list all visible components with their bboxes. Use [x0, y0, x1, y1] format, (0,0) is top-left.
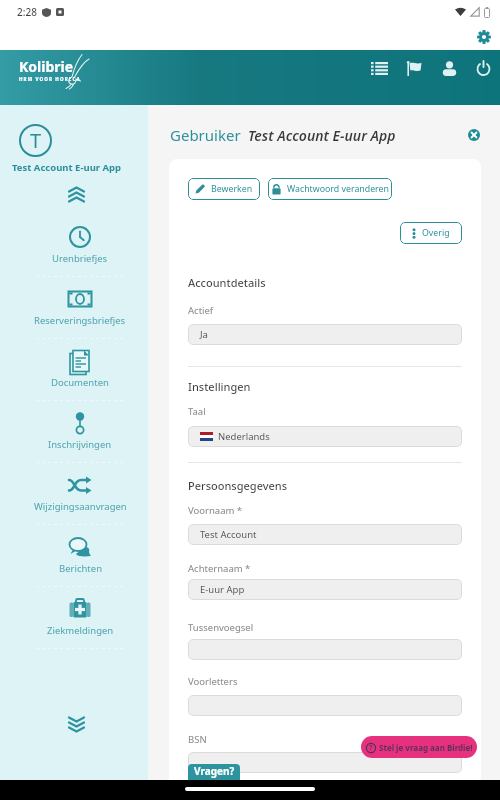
staticText: ? — [369, 743, 373, 753]
staticText: Overig — [422, 227, 450, 239]
button[interactable] — [477, 30, 491, 44]
button[interactable]: Reserveringsbriefjes — [6, 288, 154, 350]
staticText: Urenbriefjes — [52, 252, 108, 265]
button[interactable] — [468, 129, 480, 141]
staticText: BSN — [188, 733, 207, 746]
staticText: Achternaam * — [188, 562, 251, 575]
staticText: Actief — [188, 304, 214, 317]
staticText: Test Account — [200, 528, 257, 541]
button[interactable]: Wijzigingsaanvragen — [6, 474, 154, 536]
button[interactable]: ? — [361, 736, 477, 758]
button[interactable]: Vragen? — [188, 764, 240, 780]
staticText: Ziekmeldingen — [47, 624, 114, 637]
staticText: Wijzigingsaanvragen — [34, 500, 127, 513]
staticText: 2:28 — [17, 5, 37, 19]
staticText: Reserveringsbriefjes — [34, 314, 126, 327]
button[interactable]: Bewerken — [188, 178, 260, 200]
staticText: Persoonsgegevens — [188, 478, 288, 493]
staticText: Tussenvoegsel — [188, 621, 254, 634]
button[interactable] — [371, 62, 388, 75]
button[interactable]: Urenbriefjes — [6, 226, 154, 288]
button[interactable]: Documenten — [6, 350, 154, 412]
staticText: Inschrijvingen — [48, 438, 112, 451]
staticText: Voornaam * — [188, 504, 243, 517]
button[interactable]: Overig — [400, 222, 462, 244]
button[interactable] — [407, 61, 423, 76]
staticText: Voorletters — [188, 675, 238, 688]
staticText: Vragen? — [194, 764, 235, 778]
staticText: E-uur App — [200, 583, 245, 596]
button[interactable] — [69, 715, 84, 733]
button[interactable]: Berichten — [6, 536, 154, 598]
staticText: Nederlands — [218, 430, 270, 443]
button[interactable]: Ziekmeldingen — [6, 598, 154, 660]
button[interactable]: Inschrijvingen — [6, 412, 154, 474]
staticText: Instellingen — [188, 379, 251, 394]
staticText: T — [30, 127, 42, 154]
staticText: Ja — [200, 328, 208, 341]
button[interactable] — [442, 61, 457, 76]
staticText: Kolibrie — [19, 57, 74, 76]
staticText: HRM VOOR HORECA — [19, 76, 81, 82]
staticText: Test Account E-uur App — [12, 161, 122, 174]
staticText: Documenten — [51, 376, 109, 389]
button[interactable] — [476, 61, 491, 76]
staticText: Test Account E-uur App — [248, 126, 396, 145]
staticText: Accountdetails — [188, 275, 266, 290]
button[interactable]: T — [19, 124, 52, 157]
staticText: Bewerken — [211, 183, 253, 195]
staticText: Gebruiker — [170, 125, 241, 145]
staticText: Berichten — [59, 562, 102, 575]
staticText: Taal — [188, 405, 206, 418]
button[interactable]: Wachtwoord veranderen — [268, 178, 392, 200]
staticText: Stel je vraag aan Birdie! — [379, 742, 473, 753]
button[interactable] — [69, 185, 84, 203]
staticText: Wachtwoord veranderen — [287, 183, 389, 195]
